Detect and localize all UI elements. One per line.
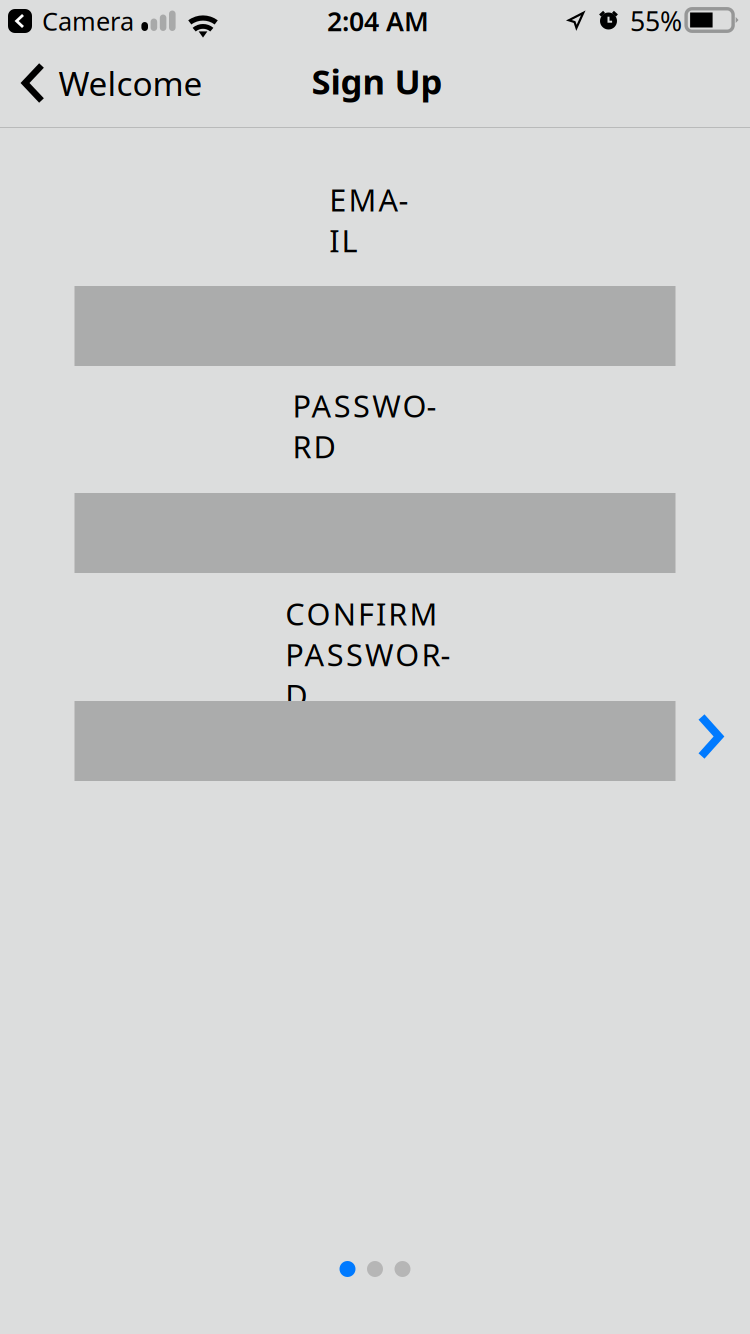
staticText: 55%	[630, 3, 682, 39]
button[interactable]: Next	[683, 699, 737, 774]
staticText: 2:04 AM	[327, 3, 429, 39]
staticText: CONFIRM PASSWORD	[285, 593, 465, 675]
button[interactable]: Back to Camera	[8, 4, 134, 38]
staticText: PASSWORD	[292, 385, 458, 467]
staticText: Camera	[42, 4, 134, 38]
staticText: EMAIL	[329, 179, 421, 261]
staticText: Welcome	[58, 61, 202, 105]
staticText: Sign Up	[311, 58, 442, 104]
button[interactable]: Welcome	[0, 47, 223, 119]
